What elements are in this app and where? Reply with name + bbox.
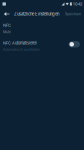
- button[interactable]: NFC: [0, 20, 84, 35]
- staticText: NFC: [3, 23, 11, 28]
- staticText: Speichern: [65, 12, 81, 16]
- button[interactable]: Speichern: [65, 12, 84, 16]
- staticText: Zusätzliche Einstellungen: [14, 11, 59, 17]
- button[interactable]: Back: [0, 8, 14, 20]
- staticText: NFC Automatisieren: [3, 41, 37, 45]
- staticText: Automatisch ausführen: [3, 48, 40, 52]
- staticText: 10:42: [73, 2, 82, 6]
- button[interactable]: NFC Automatisieren: [0, 35, 84, 54]
- staticText: Multi: [3, 30, 11, 34]
